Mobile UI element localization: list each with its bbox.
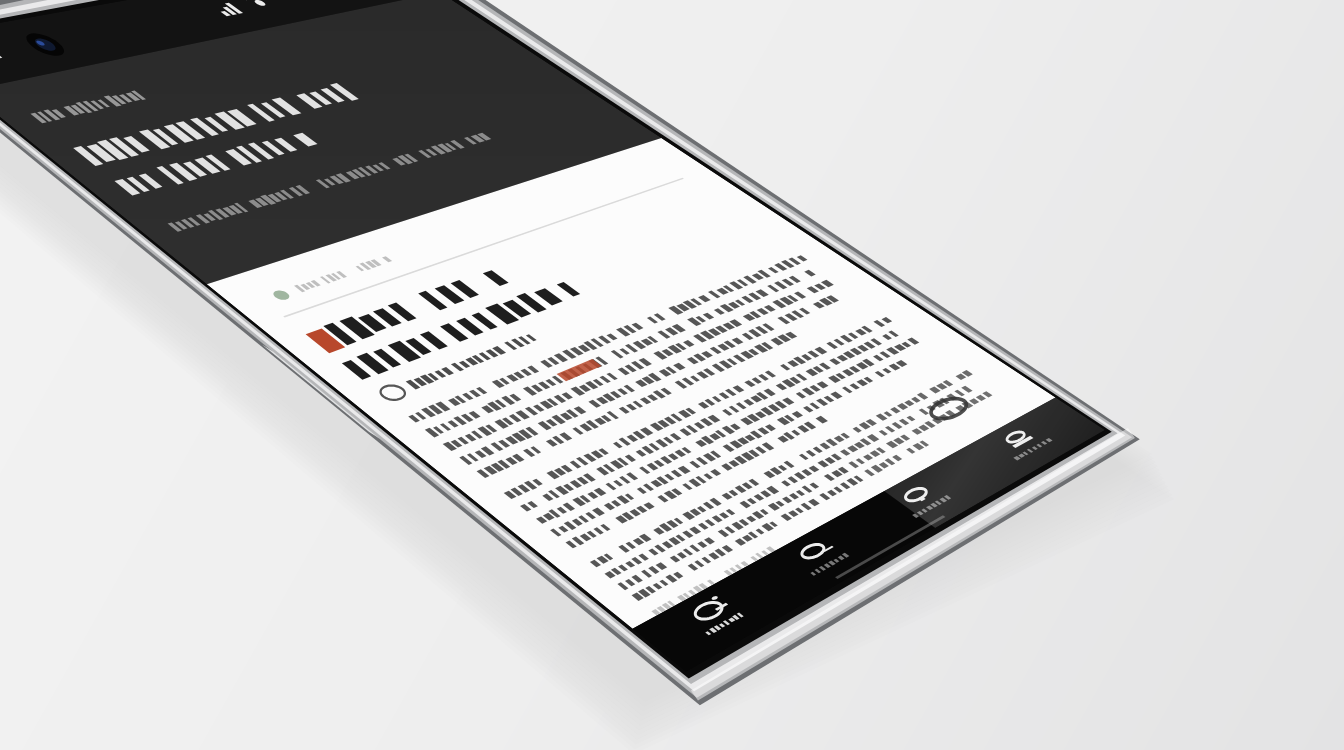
button[interactable]: Profile	[1015, 345, 1120, 445]
button[interactable]: Home	[700, 455, 830, 575]
button[interactable]: Search	[820, 415, 940, 530]
button[interactable]: Article headline	[120, 255, 380, 395]
button[interactable]: Bookmarks	[925, 380, 1040, 485]
button[interactable]: More options	[955, 355, 1065, 450]
button[interactable]: Back	[40, 75, 360, 225]
